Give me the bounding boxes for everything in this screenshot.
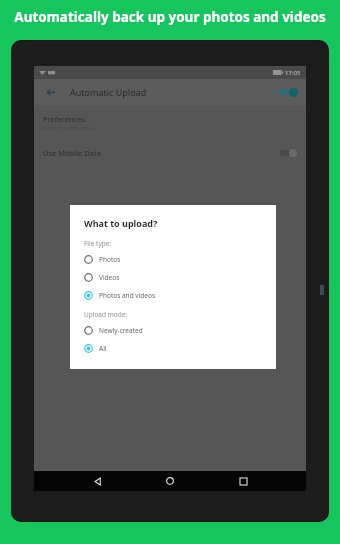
button[interactable]: All: [84, 344, 264, 353]
button[interactable]: Home: [160, 471, 180, 491]
button[interactable]: Automatic upload toggle: [276, 85, 298, 99]
staticText: Upload mode:: [84, 310, 128, 319]
staticText: 17:05: [285, 69, 301, 77]
button[interactable]: Photos and videos: [84, 291, 264, 300]
button[interactable]: Back: [87, 471, 107, 491]
staticText: Automatically back up your photos and vi…: [14, 8, 326, 26]
staticText: Newly-created: [99, 326, 143, 335]
staticText: Videos: [99, 273, 120, 282]
staticText: Photos: [99, 255, 121, 264]
staticText: Preferences: [43, 114, 85, 124]
staticText: File type:: [84, 239, 112, 248]
button[interactable]: Photos: [84, 255, 264, 264]
staticText: All: [99, 344, 107, 353]
button[interactable]: Use Mobile Data: [34, 140, 306, 166]
button[interactable]: Recent apps: [233, 471, 253, 491]
staticText: Photos and videos: [99, 291, 156, 300]
button[interactable]: Newly-created: [84, 326, 264, 335]
staticText: Use Mobile Data: [43, 148, 101, 158]
button[interactable]: Back: [42, 84, 58, 100]
button[interactable]: Videos: [84, 273, 264, 282]
staticText: What to upload?: [84, 217, 158, 229]
staticText: Automatic Upload: [70, 86, 147, 98]
